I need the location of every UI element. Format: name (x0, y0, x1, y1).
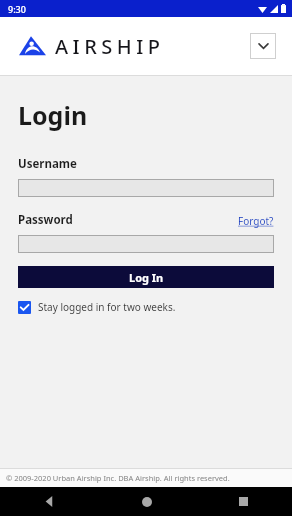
staticText: AIRSHIP (55, 33, 165, 60)
staticText: Log In (129, 270, 164, 285)
button[interactable]: Forgot? (238, 214, 274, 228)
button[interactable]: Recent apps (195, 487, 292, 516)
button[interactable]: Back (0, 487, 98, 516)
button[interactable]: Home (98, 487, 195, 516)
button[interactable]: Open menu (250, 33, 276, 59)
button[interactable] (18, 179, 274, 197)
staticText: 9:30 (8, 3, 26, 15)
staticText: Forgot? (238, 214, 274, 228)
button[interactable]: Log In (18, 266, 274, 288)
staticText: Login (18, 98, 88, 132)
staticText: © 2009-2020 Urban Airship Inc. DBA Airsh… (6, 473, 230, 483)
staticText: Password (18, 212, 73, 228)
staticText: Stay logged in for two weeks. (38, 300, 176, 314)
button[interactable]: Stay logged in for two weeks. (18, 300, 176, 314)
staticText: Username (18, 156, 77, 172)
button[interactable] (18, 235, 274, 253)
